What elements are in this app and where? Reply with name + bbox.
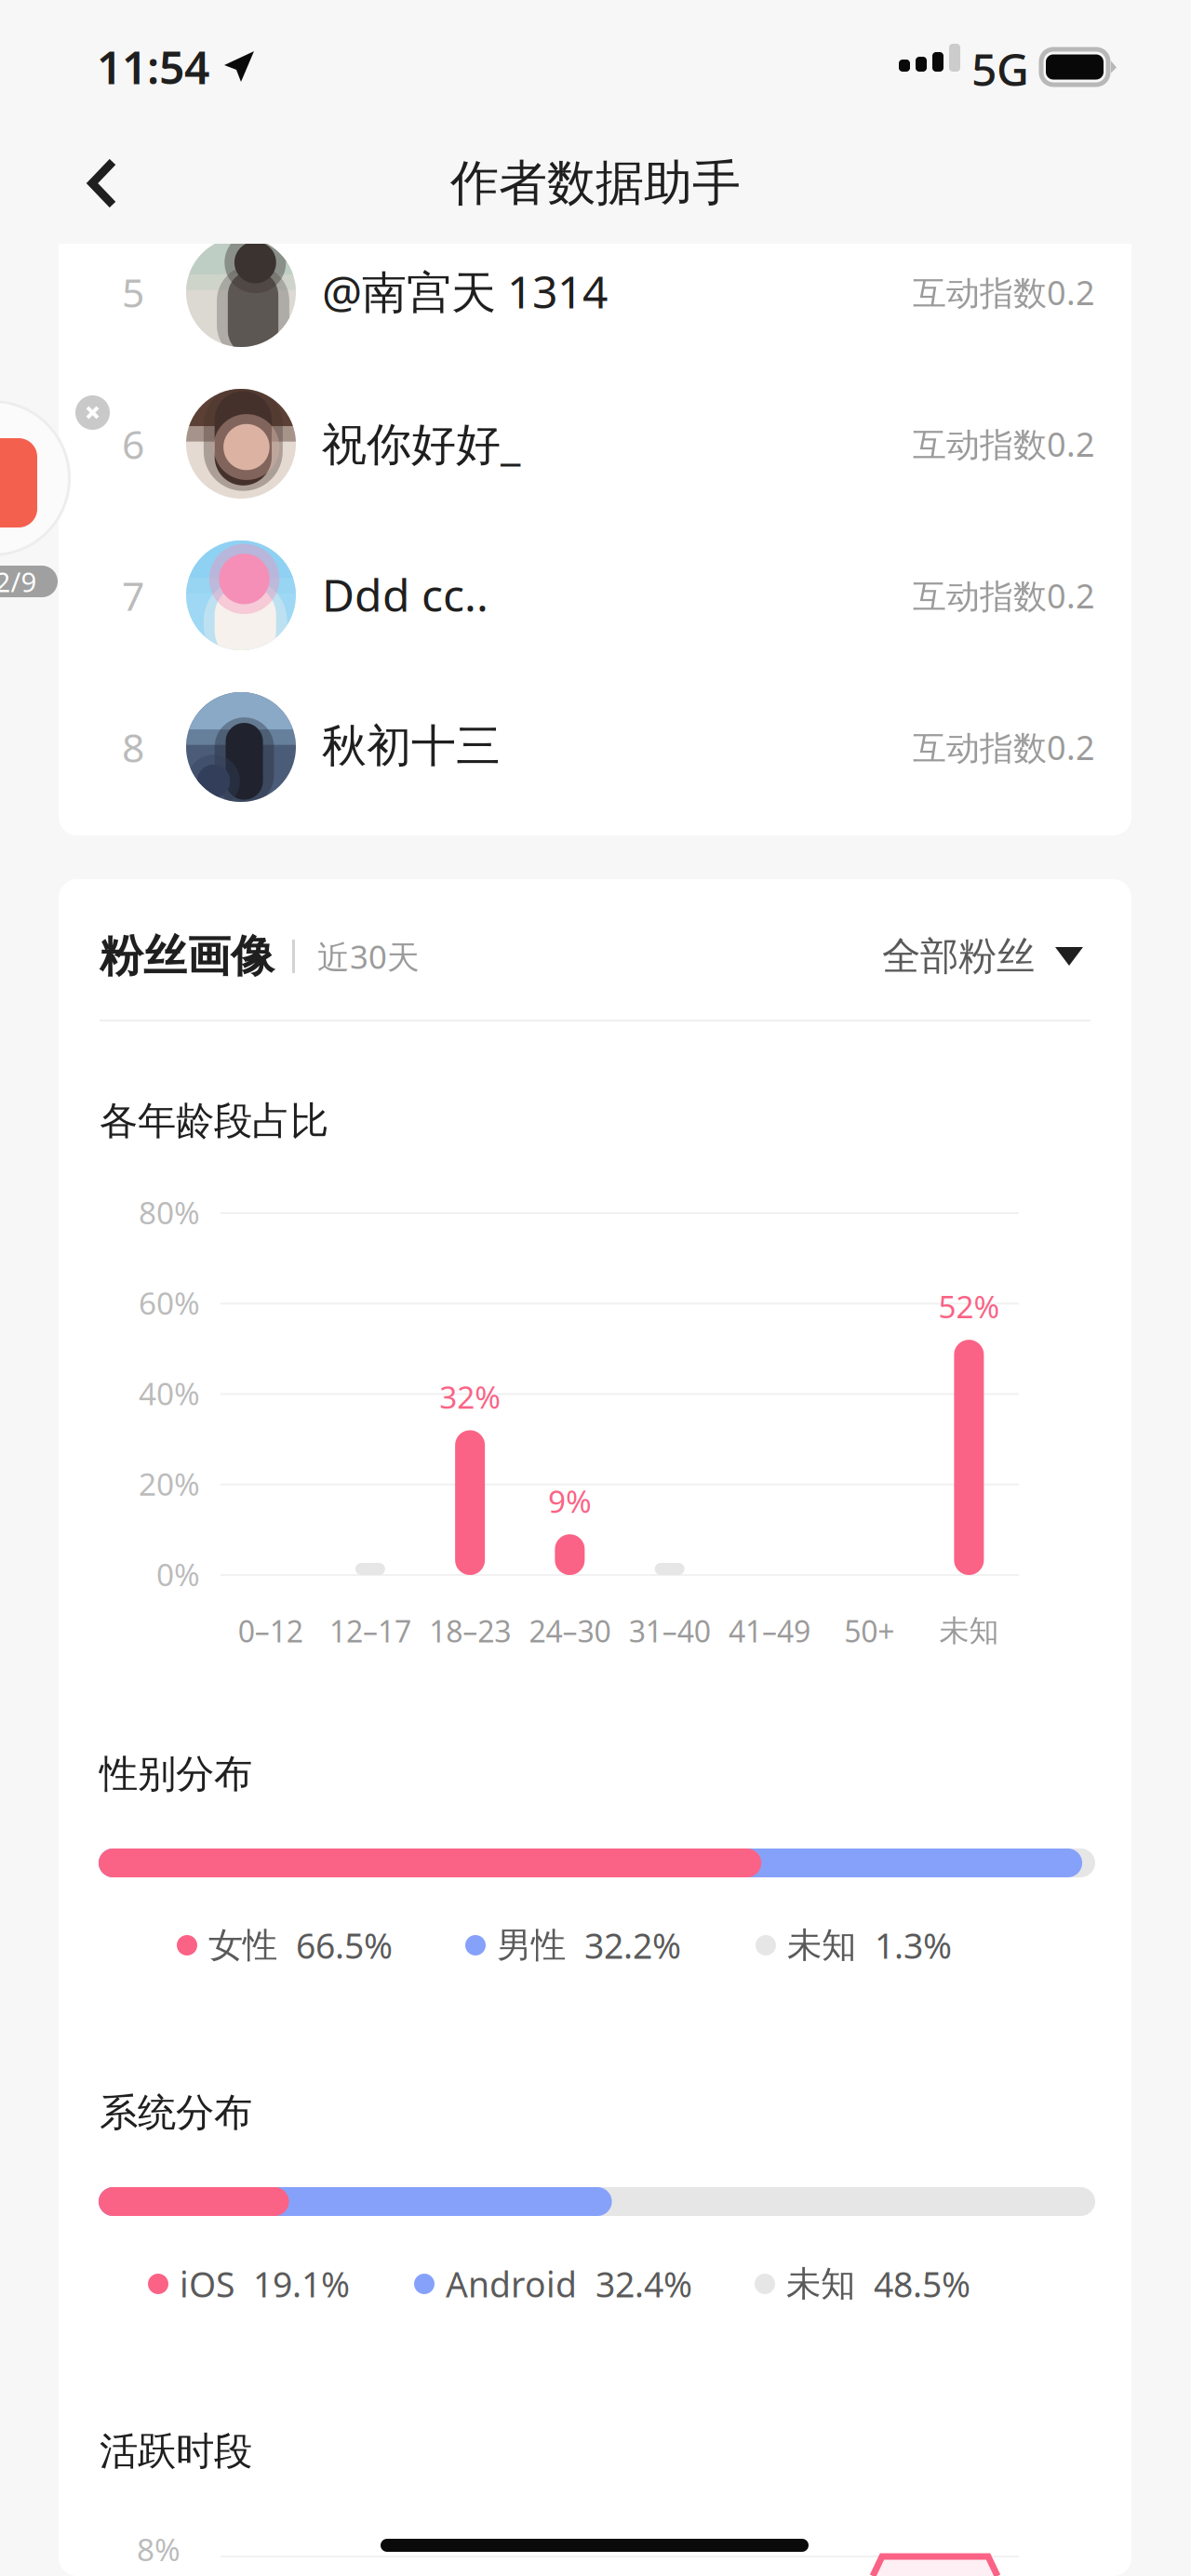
- staticText: 24–30: [529, 1611, 611, 1651]
- staticText: 80%: [139, 1192, 200, 1233]
- staticText: 20%: [139, 1463, 200, 1504]
- staticText: 系统分布: [100, 2089, 252, 2136]
- staticText: 11:54: [97, 37, 209, 97]
- staticText: 60%: [139, 1282, 200, 1323]
- staticText: 32.4%: [595, 2261, 692, 2307]
- staticText: 秋初十三: [322, 719, 501, 774]
- staticText: 50+: [844, 1611, 894, 1651]
- staticText: 活跃时段: [100, 2428, 252, 2475]
- staticText: 2/9: [0, 563, 37, 600]
- staticText: 48.5%: [874, 2261, 970, 2307]
- staticText: 1.3%: [875, 1922, 952, 1968]
- staticText: 祝你好好_: [322, 413, 520, 472]
- staticText: 32%: [439, 1376, 501, 1417]
- staticText: 未知: [939, 1612, 999, 1649]
- staticText: 52%: [938, 1286, 1000, 1327]
- staticText: 各年龄段占比: [100, 1097, 328, 1145]
- button[interactable]: 5: [59, 216, 1131, 367]
- staticText: 未知: [786, 2263, 855, 2305]
- staticText: 66.5%: [296, 1922, 393, 1968]
- staticText: 性别分布: [100, 1750, 252, 1798]
- staticText: 未知: [787, 1924, 856, 1967]
- staticText: 互动指数0.2: [913, 270, 1095, 314]
- button[interactable]: 6: [59, 367, 1131, 519]
- staticText: 女性: [208, 1924, 277, 1967]
- staticText: 6: [122, 417, 144, 470]
- staticText: 互动指数0.2: [913, 422, 1095, 466]
- staticText: @南宫天 1314: [322, 262, 608, 321]
- staticText: iOS: [180, 2261, 234, 2307]
- button[interactable]: 8: [59, 671, 1131, 822]
- button[interactable]: 全部粉丝: [882, 933, 1083, 980]
- staticText: 40%: [139, 1373, 200, 1414]
- button[interactable]: 7: [59, 519, 1131, 671]
- button[interactable]: Close: [75, 395, 110, 430]
- staticText: Android: [446, 2261, 577, 2307]
- button[interactable]: Back: [56, 140, 149, 226]
- staticText: 男性: [497, 1924, 566, 1967]
- staticText: 5G: [971, 39, 1029, 98]
- staticText: 8%: [137, 2528, 181, 2570]
- staticText: 0–12: [238, 1611, 303, 1651]
- staticText: 32.2%: [584, 1922, 681, 1968]
- staticText: 互动指数0.2: [913, 725, 1095, 769]
- staticText: 19.1%: [253, 2261, 350, 2307]
- staticText: 18–23: [429, 1611, 511, 1651]
- staticText: 5: [122, 266, 144, 319]
- staticText: 0%: [156, 1554, 200, 1595]
- staticText: 7: [122, 569, 144, 622]
- staticText: 近30天: [317, 935, 420, 978]
- staticText: 12–17: [329, 1611, 411, 1651]
- staticText: 31–40: [629, 1611, 711, 1651]
- staticText: Ddd cc..: [322, 565, 488, 624]
- staticText: 9%: [548, 1480, 592, 1521]
- staticText: 全部粉丝: [882, 933, 1035, 980]
- staticText: 41–49: [728, 1611, 810, 1651]
- staticText: 互动指数0.2: [913, 573, 1095, 618]
- staticText: 8: [122, 721, 144, 773]
- staticText: 粉丝画像: [100, 930, 274, 983]
- staticText: 作者数据助手: [450, 154, 741, 213]
